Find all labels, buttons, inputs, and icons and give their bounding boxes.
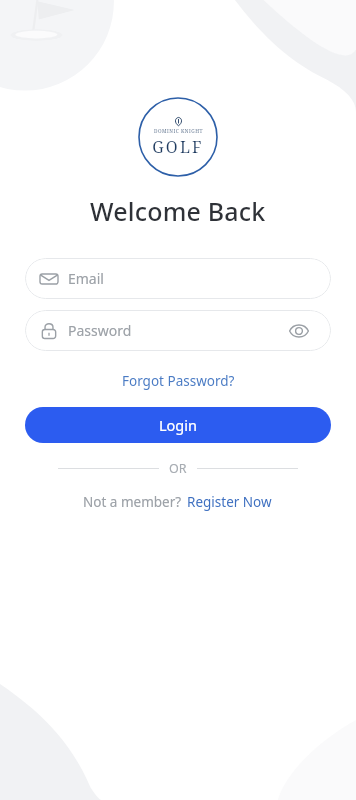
staticText: OR <box>169 460 187 477</box>
staticText: GOLF <box>152 136 204 158</box>
button[interactable]: Login <box>25 407 331 443</box>
staticText: Not a member? <box>83 493 185 511</box>
staticText: Password <box>68 321 282 340</box>
staticText: Register Now <box>187 493 272 511</box>
staticText: Forgot Password? <box>122 372 235 390</box>
staticText: DOMINIC KNIGHT <box>154 128 203 135</box>
button[interactable]: Email <box>25 258 331 299</box>
button[interactable]: Show password <box>282 314 316 348</box>
staticText: Login <box>159 415 197 435</box>
button[interactable]: Password <box>25 310 331 351</box>
button[interactable]: Register Now <box>185 491 274 513</box>
button[interactable]: Forgot Password? <box>116 369 241 393</box>
staticText: Email <box>68 269 316 288</box>
staticText: Welcome Back <box>90 194 266 228</box>
